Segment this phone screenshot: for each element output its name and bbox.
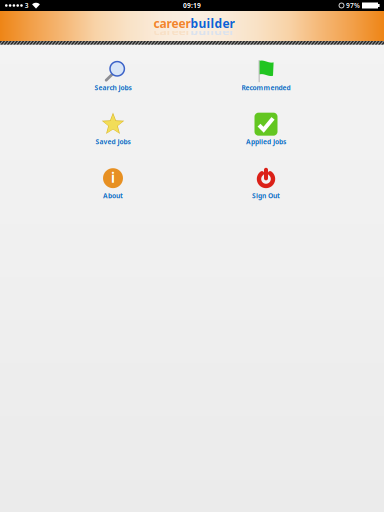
button[interactable]: Recommended (190, 48, 342, 102)
staticText: 09:19 (183, 1, 201, 10)
staticText: Search Jobs (94, 83, 131, 92)
staticText: 3 (25, 1, 29, 10)
staticText: Saved Jobs (95, 137, 130, 146)
staticText: career (153, 15, 190, 31)
button[interactable]: i (37, 156, 189, 210)
button[interactable]: Search Jobs (37, 48, 189, 102)
staticText: builder (190, 15, 234, 31)
button[interactable]: Saved Jobs (37, 102, 189, 156)
staticText: builder (190, 23, 234, 39)
staticText: i (111, 169, 115, 186)
staticText: career (153, 23, 190, 39)
staticText: Sign Out (252, 191, 280, 200)
staticText: Recommended (241, 83, 290, 92)
staticText: 97% (346, 1, 360, 10)
staticText: Applied Jobs (246, 137, 286, 146)
staticText: About (103, 191, 123, 200)
button[interactable]: Sign Out (190, 156, 342, 210)
button[interactable]: Applied Jobs (190, 102, 342, 156)
